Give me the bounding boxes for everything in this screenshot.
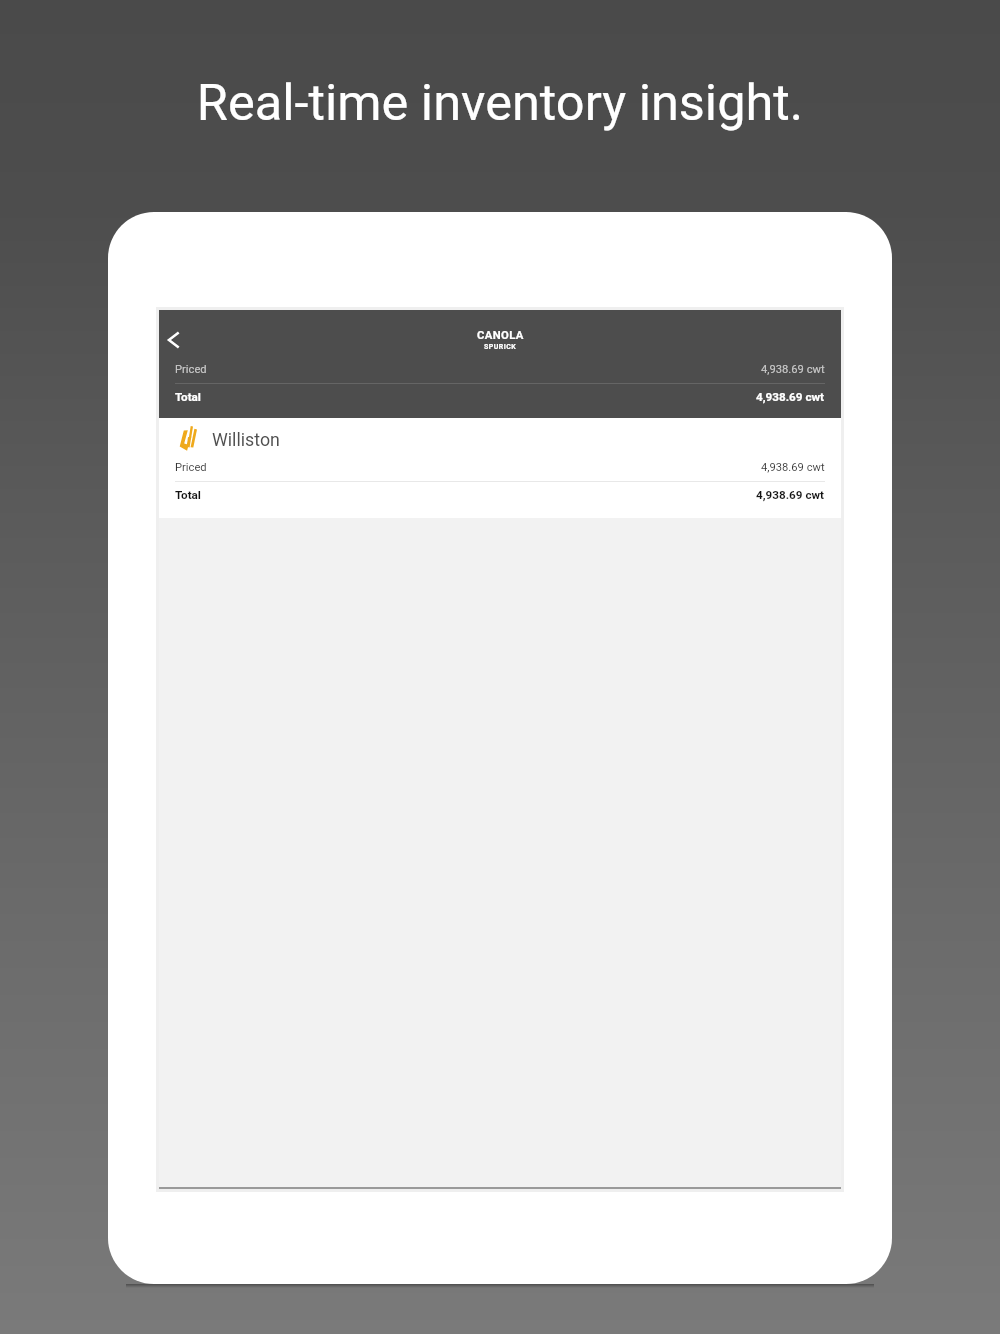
button[interactable]: Total bbox=[175, 482, 825, 518]
button[interactable]: Priced bbox=[175, 355, 825, 383]
staticText: 4,938.69 cwt bbox=[761, 363, 825, 376]
staticText: 4,938.69 cwt bbox=[761, 461, 825, 474]
staticText: Real-time inventory insight. bbox=[0, 73, 1000, 132]
button[interactable]: Williston bbox=[179, 418, 841, 453]
button[interactable]: Priced bbox=[175, 453, 825, 481]
staticText: CANOLA bbox=[477, 329, 524, 342]
button[interactable]: Total bbox=[175, 384, 825, 418]
staticText: Williston bbox=[212, 429, 280, 450]
staticText: SPURICK bbox=[484, 343, 517, 351]
staticText: Priced bbox=[175, 461, 207, 474]
staticText: Priced bbox=[175, 363, 207, 376]
staticText: 4,938.69 cwt bbox=[756, 390, 825, 404]
staticText: 4,938.69 cwt bbox=[756, 488, 825, 502]
staticText: Total bbox=[175, 390, 201, 404]
button[interactable]: Back bbox=[154, 322, 190, 358]
staticText: Total bbox=[175, 488, 201, 502]
